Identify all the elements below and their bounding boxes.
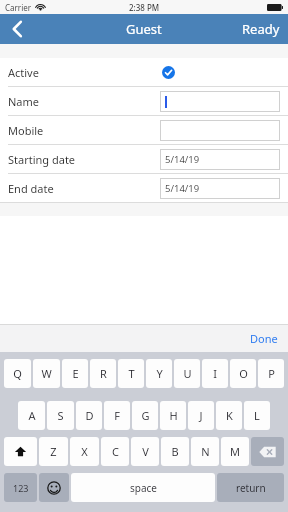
staticText: 123 bbox=[13, 482, 29, 494]
button[interactable]: Z bbox=[39, 437, 68, 466]
button[interactable]: Q bbox=[4, 359, 31, 388]
staticText: P bbox=[268, 366, 275, 381]
staticText: M bbox=[230, 444, 240, 459]
button[interactable]: E bbox=[62, 359, 88, 388]
button[interactable]: return bbox=[217, 473, 284, 502]
button[interactable]: R bbox=[90, 359, 116, 388]
button[interactable]: I bbox=[202, 359, 228, 388]
button[interactable]: C bbox=[101, 437, 129, 466]
staticText: 2:38 PM bbox=[129, 2, 160, 13]
staticText: A bbox=[28, 408, 36, 423]
button[interactable]: V bbox=[131, 437, 159, 466]
staticText: L bbox=[254, 408, 260, 423]
staticText: 5/14/19 bbox=[165, 153, 200, 166]
staticText: V bbox=[142, 444, 149, 459]
button[interactable]: Emoji keyboard bbox=[39, 473, 69, 502]
button[interactable]: Back bbox=[0, 14, 34, 44]
staticText: Mobile bbox=[8, 123, 44, 138]
button[interactable]: Name bbox=[0, 86, 288, 115]
staticText: C bbox=[112, 444, 119, 459]
button[interactable]: S bbox=[47, 401, 74, 430]
button[interactable]: W bbox=[33, 359, 60, 388]
staticText: B bbox=[171, 444, 179, 459]
button[interactable]: T bbox=[118, 359, 144, 388]
button[interactable]: N bbox=[191, 437, 219, 466]
staticText: return bbox=[236, 481, 266, 495]
staticText: Z bbox=[50, 444, 57, 459]
staticText: 5/14/19 bbox=[165, 182, 200, 195]
button[interactable]: O bbox=[230, 359, 256, 388]
staticText: E bbox=[72, 366, 79, 381]
button[interactable]: D bbox=[76, 401, 102, 430]
button[interactable]: Shift bbox=[4, 437, 37, 466]
button[interactable]: Active bbox=[0, 58, 288, 86]
button[interactable]: F bbox=[104, 401, 130, 430]
button[interactable]: X bbox=[70, 437, 99, 466]
staticText: Active bbox=[8, 65, 39, 80]
staticText: U bbox=[183, 366, 192, 381]
button[interactable]: M bbox=[221, 437, 249, 466]
staticText: Y bbox=[156, 366, 163, 381]
button[interactable]: Y bbox=[146, 359, 172, 388]
button[interactable]: 5/14/19 bbox=[160, 178, 280, 199]
button[interactable]: Ready bbox=[234, 14, 288, 44]
button[interactable]: Backspace bbox=[251, 437, 284, 466]
staticText: S bbox=[57, 408, 64, 423]
staticText: T bbox=[128, 366, 135, 381]
button[interactable]: Active checkbox bbox=[162, 66, 175, 79]
button[interactable] bbox=[160, 91, 280, 112]
staticText: F bbox=[114, 408, 120, 423]
staticText: O bbox=[239, 366, 248, 381]
button[interactable]: H bbox=[160, 401, 186, 430]
button[interactable]: 5/14/19 bbox=[160, 149, 280, 170]
staticText: End date bbox=[8, 181, 54, 196]
staticText: I bbox=[213, 366, 217, 381]
staticText: W bbox=[41, 366, 52, 381]
button[interactable]: A bbox=[18, 401, 45, 430]
button[interactable]: End date bbox=[0, 173, 288, 202]
button[interactable]: Mobile bbox=[0, 115, 288, 144]
staticText: Ready bbox=[242, 20, 280, 38]
button[interactable]: 123 bbox=[4, 473, 37, 502]
staticText: K bbox=[226, 408, 233, 423]
button[interactable] bbox=[160, 120, 280, 141]
button[interactable]: Done bbox=[240, 324, 288, 352]
button[interactable]: space bbox=[71, 473, 215, 502]
staticText: J bbox=[199, 408, 203, 423]
staticText: G bbox=[141, 408, 150, 423]
staticText: Done bbox=[250, 331, 278, 346]
staticText: Q bbox=[13, 366, 22, 381]
staticText: Carrier bbox=[5, 2, 32, 13]
button[interactable]: G bbox=[132, 401, 158, 430]
staticText: N bbox=[201, 444, 210, 459]
staticText: D bbox=[85, 408, 94, 423]
staticText: Name bbox=[8, 94, 40, 109]
button[interactable]: J bbox=[188, 401, 214, 430]
staticText: R bbox=[100, 366, 107, 381]
staticText: H bbox=[169, 408, 178, 423]
staticText: space bbox=[130, 481, 157, 495]
button[interactable]: U bbox=[174, 359, 200, 388]
staticText: X bbox=[81, 444, 88, 459]
button[interactable]: B bbox=[161, 437, 189, 466]
button[interactable]: K bbox=[216, 401, 242, 430]
button[interactable]: P bbox=[258, 359, 284, 388]
button[interactable]: Starting date bbox=[0, 144, 288, 173]
button[interactable]: L bbox=[244, 401, 270, 430]
staticText: Starting date bbox=[8, 152, 76, 167]
staticText: Guest bbox=[126, 20, 162, 38]
